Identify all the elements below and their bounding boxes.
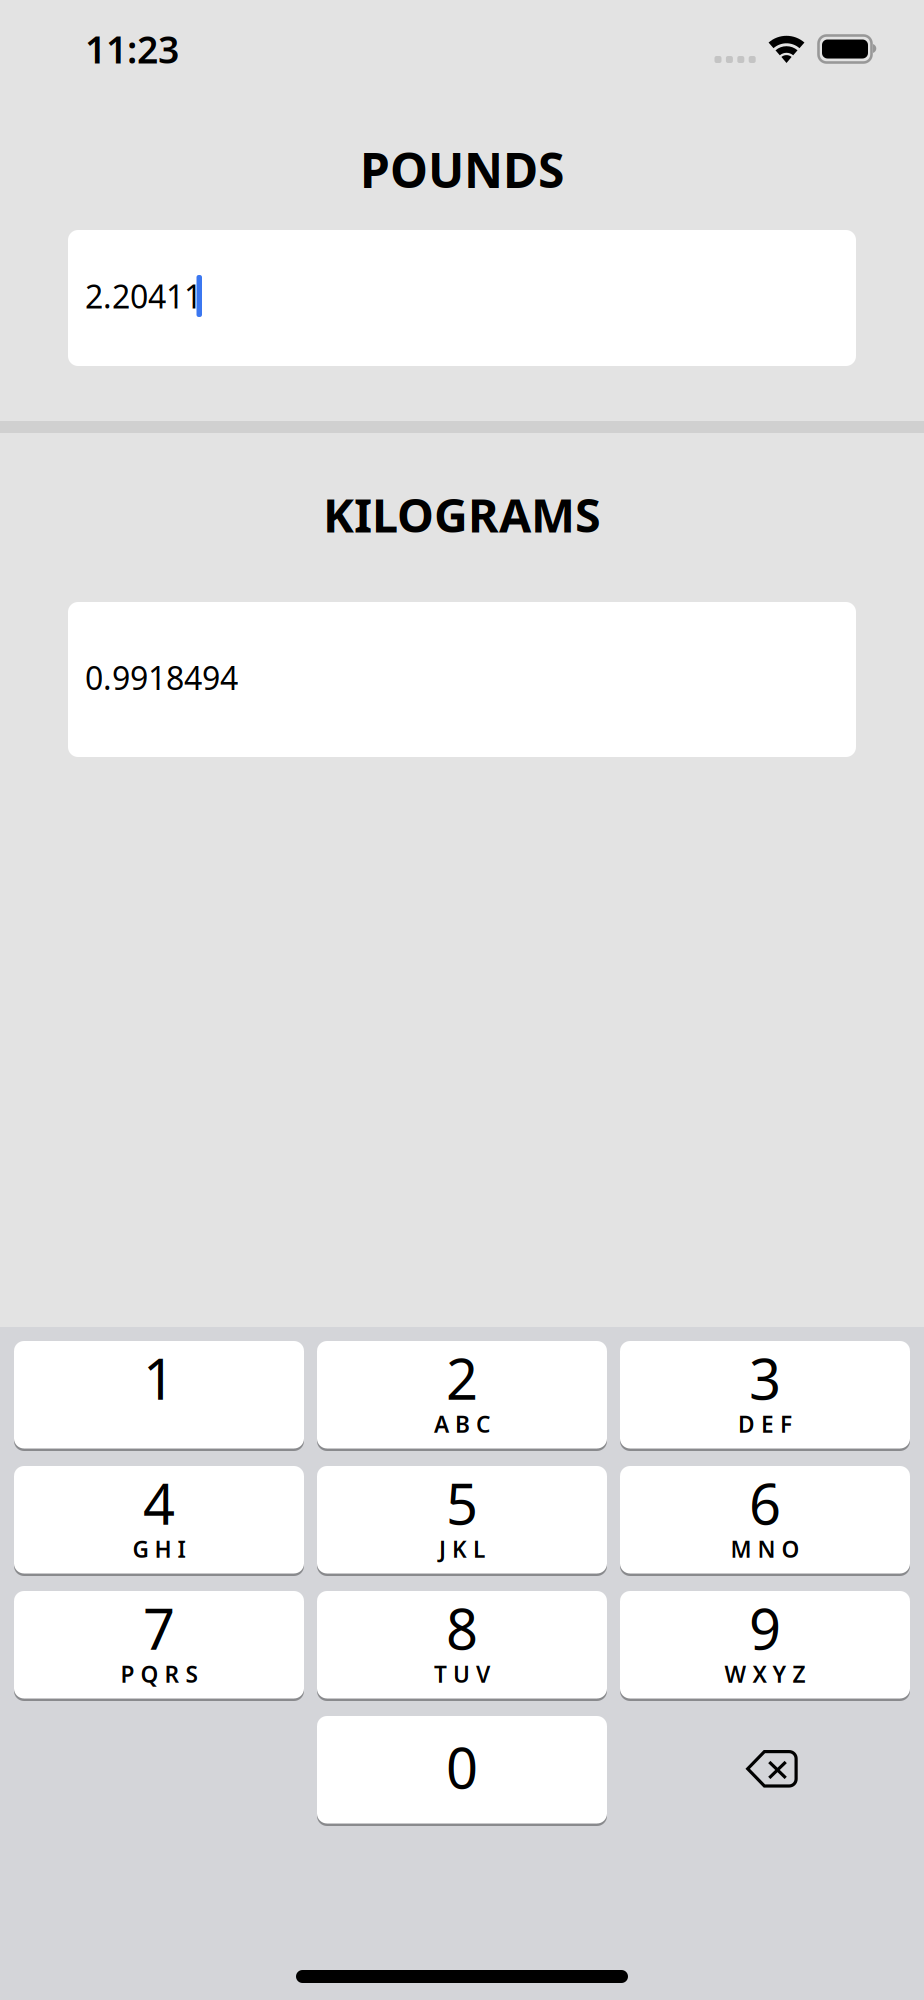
button[interactable]: 4 (14, 1466, 304, 1576)
staticText: 0 (446, 1730, 478, 1804)
staticText: 1 (143, 1341, 175, 1415)
staticText: 7 (143, 1591, 175, 1665)
staticText: D E F (738, 1409, 792, 1439)
staticText: G H I (132, 1534, 185, 1564)
staticText: 3 (749, 1341, 781, 1415)
button[interactable]: 2 (317, 1341, 607, 1451)
staticText: 8 (446, 1591, 478, 1665)
button[interactable]: Delete (620, 1716, 910, 1826)
staticText: 2 (446, 1341, 478, 1415)
button[interactable]: 8 (317, 1591, 607, 1701)
staticText: W X Y Z (724, 1659, 805, 1689)
button[interactable]: 7 (14, 1591, 304, 1701)
button[interactable]: 0.9918494 (68, 602, 856, 757)
staticText: KILOGRAMS (323, 483, 601, 545)
staticText: A B C (434, 1409, 490, 1439)
button[interactable]: 5 (317, 1466, 607, 1576)
staticText: P Q R S (120, 1659, 197, 1689)
staticText: 2.20411 (85, 275, 202, 317)
button[interactable]: 3 (620, 1341, 910, 1451)
button[interactable]: 9 (620, 1591, 910, 1701)
staticText: 0.9918494 (85, 656, 238, 699)
staticText: 5 (446, 1466, 478, 1540)
staticText: 9 (749, 1591, 781, 1665)
staticText: 11:23 (85, 24, 179, 74)
staticText: J K L (439, 1534, 485, 1564)
button[interactable]: 2.20411 (68, 230, 856, 366)
staticText: T U V (434, 1659, 490, 1689)
button[interactable]: 6 (620, 1466, 910, 1576)
staticText: 4 (143, 1466, 175, 1540)
staticText: POUNDS (360, 138, 564, 201)
staticText: M N O (730, 1534, 799, 1564)
button[interactable]: 1 (14, 1341, 304, 1451)
staticText: 6 (749, 1466, 781, 1540)
button[interactable]: 0 (317, 1716, 607, 1826)
